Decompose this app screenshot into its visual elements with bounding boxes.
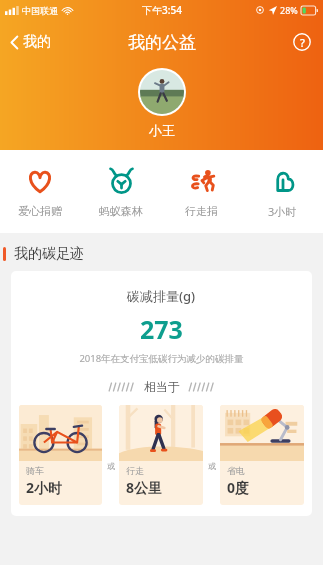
staticText: 行走 [126,465,144,476]
staticText: 8公里 [126,478,163,497]
button[interactable]: 行走 [119,405,203,505]
staticText: 省电 [227,465,245,476]
staticText: 2018年在支付宝低碳行为减少的碳排量 [79,352,244,365]
staticText: 或 [208,461,216,471]
button[interactable]: Profile avatar [138,68,186,116]
staticText: 或 [107,461,115,471]
staticText: 我的 [23,33,51,51]
staticText: 骑车 [26,465,44,476]
button[interactable]: 蚂蚁森林 [80,164,161,220]
button[interactable]: 爱心捐赠 [0,164,80,220]
staticText: 28% [280,4,298,16]
button[interactable]: 碳减排量(g) [11,271,312,516]
staticText: 小王 [149,122,175,138]
staticText: 2小时 [26,478,63,497]
button[interactable]: 行走捐 [161,164,242,220]
staticText: 下午3:54 [142,3,182,17]
staticText: 273 [140,312,183,346]
button[interactable]: 我的 [6,29,55,55]
button[interactable]: 骑车 [19,405,102,505]
staticText: 爱心捐赠 [18,204,62,218]
staticText: 蚂蚁森林 [99,204,143,218]
staticText: 0度 [227,478,250,497]
staticText: 碳减排量(g) [127,287,196,305]
staticText: 行走捐 [185,204,218,218]
button[interactable]: 3小时 [242,164,323,221]
staticText: 3小时 [268,204,297,219]
staticText: 我的碳足迹 [14,245,84,263]
staticText: 相当于 [144,379,180,394]
button[interactable]: Help [289,29,315,55]
button[interactable]: 省电 [220,405,304,505]
staticText: 中国联通 [22,5,58,16]
staticText: ? [300,35,305,50]
staticText: 我的公益 [128,32,196,53]
